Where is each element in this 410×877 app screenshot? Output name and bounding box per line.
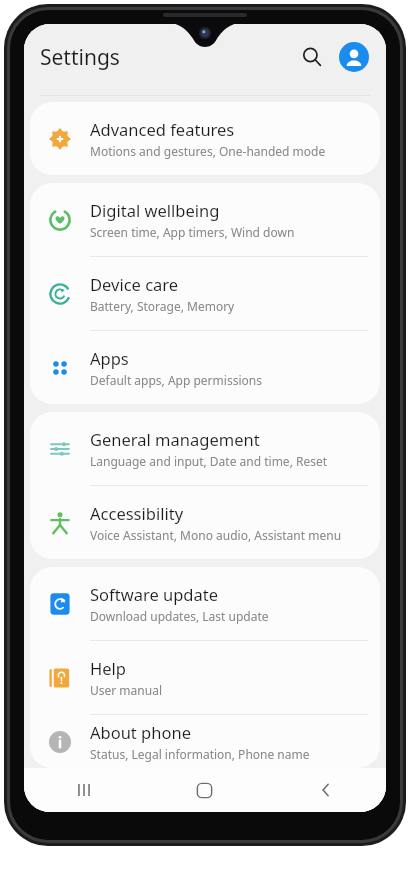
staticText: Help bbox=[90, 657, 126, 679]
staticText: Battery, Storage, Memory bbox=[90, 298, 235, 314]
button[interactable]: About phone bbox=[30, 715, 380, 768]
button[interactable]: Device care bbox=[30, 257, 380, 330]
staticText: About phone bbox=[90, 721, 191, 743]
button[interactable]: Search bbox=[292, 37, 332, 77]
staticText: Status, Legal information, Phone name bbox=[90, 746, 310, 762]
button[interactable]: Help bbox=[30, 641, 380, 714]
button[interactable]: Advanced features bbox=[30, 102, 380, 175]
button[interactable]: Software update bbox=[30, 567, 380, 640]
button[interactable]: Recents bbox=[24, 768, 144, 812]
staticText: Software update bbox=[90, 583, 218, 605]
staticText: Apps bbox=[90, 347, 129, 369]
staticText: Device care bbox=[90, 273, 179, 295]
staticText: Voice Assistant, Mono audio, Assistant m… bbox=[90, 527, 342, 543]
staticText: Motions and gestures, One-handed mode bbox=[90, 143, 326, 159]
button[interactable]: General management bbox=[30, 412, 380, 485]
button[interactable]: Apps bbox=[30, 331, 380, 404]
button[interactable]: Back bbox=[265, 768, 386, 812]
staticText: Accessibility bbox=[90, 502, 184, 524]
staticText: Default apps, App permissions bbox=[90, 372, 262, 388]
staticText: Advanced features bbox=[90, 118, 235, 140]
staticText: Language and input, Date and time, Reset bbox=[90, 453, 328, 469]
staticText: Digital wellbeing bbox=[90, 199, 220, 221]
button[interactable]: Home bbox=[144, 768, 265, 812]
staticText: General management bbox=[90, 428, 260, 450]
staticText: Download updates, Last update bbox=[90, 608, 269, 624]
button[interactable]: Accessibility bbox=[30, 486, 380, 559]
staticText: User manual bbox=[90, 682, 162, 698]
button[interactable]: Account bbox=[334, 37, 374, 77]
staticText: Settings bbox=[40, 43, 120, 72]
staticText: Screen time, App timers, Wind down bbox=[90, 224, 295, 240]
button[interactable]: Digital wellbeing bbox=[30, 183, 380, 256]
